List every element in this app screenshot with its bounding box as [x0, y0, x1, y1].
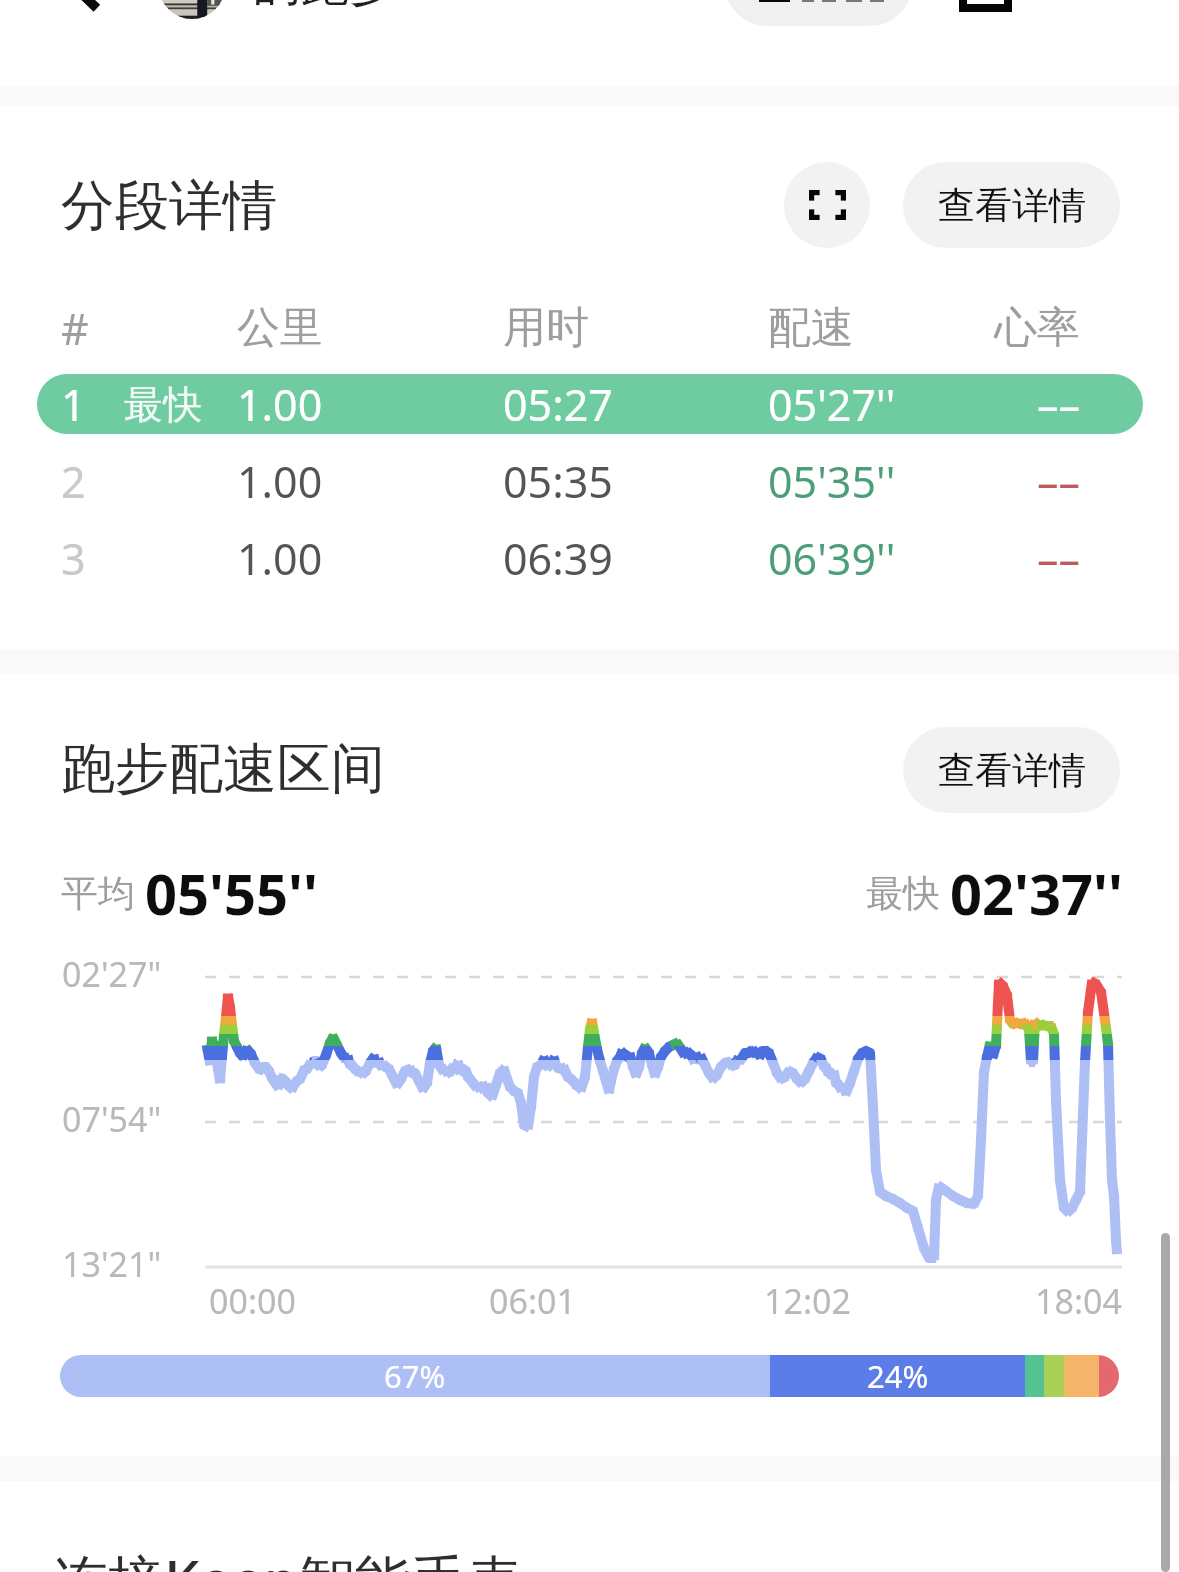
staticText: 05'55'' — [145, 855, 318, 931]
staticText: 公里 — [237, 301, 323, 355]
staticText: 05:27 — [503, 375, 613, 434]
staticText: 连接Keep智能手表 — [52, 1541, 523, 1572]
staticText: 的跑步 — [253, 0, 397, 14]
button[interactable]: 67% — [60, 1355, 1119, 1397]
staticText: –– — [1037, 452, 1080, 511]
button[interactable] — [724, 0, 913, 26]
staticText: 配速 — [768, 301, 854, 355]
staticText: 1.00 — [237, 529, 323, 588]
button[interactable]: 1 — [37, 374, 1143, 434]
staticText: 最快 — [124, 380, 202, 429]
staticText: 02'27" — [62, 951, 162, 997]
button[interactable]: Back — [56, 0, 104, 5]
button[interactable]: 3 — [37, 528, 1143, 588]
staticText: 05:35 — [503, 452, 613, 511]
staticText: 1.00 — [237, 375, 323, 434]
staticText: 18:04 — [1035, 1278, 1122, 1324]
staticText: 跑步配速区间 — [61, 735, 385, 803]
staticText: 05'27'' — [768, 375, 896, 434]
staticText: 1.00 — [237, 452, 323, 511]
staticText: 67% — [384, 1355, 446, 1397]
staticText: 05'35'' — [768, 452, 896, 511]
staticText: 07'54" — [62, 1096, 162, 1142]
staticText: 平均 — [61, 870, 135, 917]
button[interactable]: 查看详情 — [903, 727, 1120, 813]
staticText: 02'37'' — [950, 855, 1123, 931]
button[interactable]: 2 — [37, 451, 1143, 511]
button[interactable]: Profile photo — [159, 0, 225, 19]
staticText: 12:02 — [764, 1278, 851, 1324]
staticText: –– — [1037, 375, 1080, 434]
staticText: 用时 — [503, 301, 589, 355]
button[interactable]: Fullscreen — [784, 162, 870, 248]
staticText: 最快 — [866, 870, 940, 917]
staticText: 24% — [867, 1355, 929, 1397]
staticText: 1 — [61, 375, 86, 434]
staticText: –– — [1037, 529, 1080, 588]
staticText: 00:00 — [209, 1278, 296, 1324]
staticText: 心率 — [994, 301, 1080, 355]
staticText: 查看详情 — [938, 747, 1086, 794]
staticText: 查看详情 — [938, 182, 1086, 229]
staticText: # — [61, 299, 89, 358]
staticText: 3 — [61, 529, 86, 588]
staticText: 06'39'' — [768, 529, 896, 588]
button[interactable]: 查看详情 — [903, 162, 1120, 248]
button[interactable]: # — [37, 298, 1143, 358]
staticText: 06:01 — [489, 1278, 576, 1324]
other: Share — [963, 0, 1008, 8]
staticText: 分段详情 — [61, 172, 277, 240]
staticText: 13'21" — [62, 1241, 162, 1287]
staticText: 2 — [61, 452, 86, 511]
staticText: 06:39 — [503, 529, 613, 588]
